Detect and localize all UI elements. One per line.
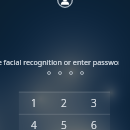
- button[interactable]: 1: [19, 92, 49, 114]
- other: User avatar: [57, 0, 73, 8]
- button[interactable]: 4: [19, 114, 49, 130]
- button[interactable]: 3: [79, 92, 109, 114]
- button[interactable]: 5: [49, 114, 79, 130]
- staticText: 1: [31, 96, 37, 110]
- staticText: 5: [61, 118, 67, 130]
- staticText: 4: [31, 118, 37, 130]
- staticText: 3: [91, 96, 97, 110]
- button[interactable]: 6: [79, 114, 109, 130]
- staticText: 2: [61, 96, 67, 110]
- button[interactable]: 2: [49, 92, 79, 114]
- staticText: 6: [91, 118, 97, 130]
- staticText: Use facial recognition or enter password: [0, 57, 119, 67]
